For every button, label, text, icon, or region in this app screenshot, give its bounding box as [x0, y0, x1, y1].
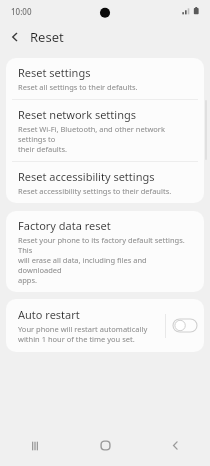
staticText: Reset accessibility settings — [18, 169, 155, 184]
staticText: Reset accessibility settings to their de… — [18, 186, 172, 196]
button[interactable]: Factory data reset — [6, 211, 204, 292]
staticText: Your phone will restart automatically wi… — [18, 324, 148, 344]
staticText: Auto restart — [18, 307, 80, 322]
button[interactable]: Back — [0, 22, 30, 52]
button[interactable]: Auto restart toggle — [166, 309, 204, 342]
staticText: Reset settings — [18, 65, 91, 80]
staticText: Reset network settings — [18, 107, 136, 122]
button[interactable]: Back — [140, 425, 210, 466]
button[interactable]: Home — [70, 425, 140, 466]
staticText: Reset — [30, 28, 64, 46]
button[interactable]: Reset settings — [6, 58, 204, 99]
button[interactable]: Reset accessibility settings — [6, 162, 204, 203]
button[interactable]: Reset network settings — [6, 100, 204, 161]
staticText: Reset Wi-Fi, Bluetooth, and other networ… — [18, 124, 192, 154]
button[interactable]: Auto restart — [6, 299, 165, 352]
staticText: 10:00 — [11, 6, 32, 17]
staticText: Reset all settings to their defaults. — [18, 82, 138, 92]
staticText: Factory data reset — [18, 218, 111, 233]
button[interactable]: Recents — [0, 425, 70, 466]
staticText: Reset your phone to its factory default … — [18, 235, 192, 285]
